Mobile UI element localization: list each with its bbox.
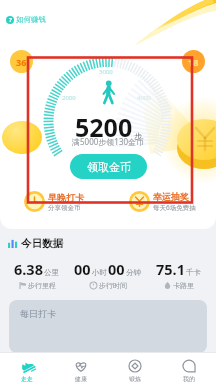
staticText: 2000 — [62, 94, 76, 102]
button[interactable]: 每日打卡 — [9, 300, 207, 353]
staticText: 早晚打卡 — [48, 192, 84, 203]
staticText: 公里 — [44, 268, 59, 277]
staticText: 00 — [74, 259, 91, 279]
staticText: 如何赚钱 — [16, 15, 46, 24]
staticText: 4000 — [137, 94, 151, 102]
staticText: 领取金币 — [87, 160, 131, 174]
button[interactable]: 36 coins — [10, 50, 33, 73]
button[interactable]: 领取金币 — [70, 154, 147, 179]
staticText: ? — [9, 16, 12, 24]
staticText: 5200 — [75, 110, 133, 144]
button[interactable]: 锻炼 — [108, 357, 162, 385]
staticText: 锻炼 — [129, 375, 141, 383]
staticText: 18 — [188, 56, 199, 68]
staticText: 走走 — [21, 375, 33, 383]
staticText: 卡路里 — [173, 281, 194, 290]
staticText: 小时 — [92, 268, 107, 277]
staticText: 步行里程 — [28, 281, 56, 290]
button[interactable]: 幸运抽奖 — [129, 191, 196, 212]
staticText: 健康 — [75, 375, 87, 383]
button[interactable]: 健康 — [54, 357, 108, 385]
staticText: 36 — [16, 56, 27, 68]
staticText: 分享领金币 — [48, 204, 81, 212]
staticText: 75.1 — [156, 259, 185, 279]
staticText: 每天6场免费抽 — [153, 203, 196, 212]
staticText: 分钟 — [126, 268, 141, 277]
button[interactable]: ? — [6, 15, 46, 24]
staticText: 每日打卡 — [20, 308, 56, 319]
staticText: 3000 — [99, 68, 113, 76]
button[interactable]: 18 coins — [182, 50, 205, 73]
staticText: 我的 — [183, 375, 195, 383]
staticText: 今日数据 — [21, 237, 63, 250]
staticText: 00 — [108, 259, 125, 279]
staticText: 6.38 — [14, 259, 43, 279]
staticText: 步 — [134, 131, 142, 141]
button[interactable]: 我的 — [162, 357, 216, 385]
staticText: 满5000步领130金币 — [72, 136, 145, 147]
button[interactable]: 早晚打卡 — [24, 191, 84, 212]
button[interactable]: 走走 — [0, 357, 54, 385]
staticText: 步行时间 — [99, 281, 127, 290]
staticText: 幸运抽奖 — [153, 191, 189, 202]
staticText: 千卡 — [186, 268, 201, 277]
